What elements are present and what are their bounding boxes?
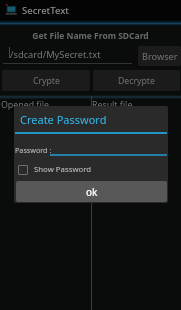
- staticText: Create Password: [20, 112, 107, 127]
- staticText: Get File Name From SDCard: [0, 30, 181, 42]
- staticText: Crypte: [33, 75, 60, 87]
- staticText: Show Password: [34, 164, 92, 175]
- button[interactable]: SecretText app icon: [0, 0, 181, 20]
- button[interactable]: Browser: [138, 46, 181, 66]
- staticText: Decrypte: [118, 75, 155, 87]
- button[interactable]: ok: [16, 181, 167, 202]
- staticText: /sdcard/MySecret.txt: [10, 48, 101, 61]
- button[interactable]: Show Password: [18, 164, 92, 175]
- staticText: SecretText: [22, 4, 69, 17]
- staticText: ok: [86, 185, 98, 199]
- staticText: Result file: [92, 99, 133, 111]
- staticText: Opened file: [1, 99, 49, 111]
- button[interactable]: Crypte: [2, 70, 90, 91]
- staticText: Password :: [15, 145, 52, 155]
- button[interactable]: Decrypte: [93, 70, 180, 91]
- staticText: Browser: [142, 50, 178, 63]
- other: SecretText app icon: [4, 3, 18, 17]
